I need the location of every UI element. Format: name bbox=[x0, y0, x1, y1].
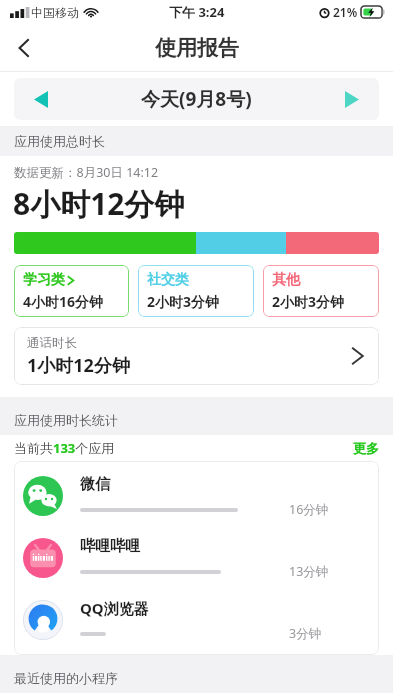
button[interactable]: 其他 bbox=[263, 265, 379, 317]
button[interactable]: 前一天 bbox=[14, 78, 68, 120]
staticText: 使用报告 bbox=[155, 35, 239, 61]
staticText: 学习类 bbox=[23, 271, 65, 289]
staticText: 应用使用时长统计 bbox=[14, 412, 118, 428]
button[interactable]: 学习类 bbox=[14, 265, 129, 317]
staticText: 1小时12分钟 bbox=[27, 353, 130, 378]
staticText: 3分钟 bbox=[289, 625, 322, 642]
button[interactable]: 微信 bbox=[14, 465, 379, 527]
staticText: 16分钟 bbox=[289, 501, 329, 518]
staticText: 8小时12分钟 bbox=[13, 183, 185, 224]
staticText: QQ浏览器 bbox=[80, 598, 149, 618]
button[interactable]: 社交类 bbox=[138, 265, 254, 317]
staticText: 4小时16分钟 bbox=[23, 292, 104, 311]
staticText: 当前共133个应用 bbox=[14, 439, 115, 457]
staticText: 通话时长 bbox=[27, 335, 77, 351]
staticText: 下午 3:24 bbox=[169, 3, 225, 21]
button[interactable]: 哔哩哔哩 bbox=[14, 527, 379, 589]
button[interactable]: QQ浏览器 bbox=[14, 589, 379, 651]
staticText: 21% bbox=[333, 4, 358, 20]
staticText: 2小时3分钟 bbox=[272, 292, 345, 311]
staticText: 哔哩哔哩 bbox=[80, 537, 140, 556]
staticText: 数据更新：8月30日 14:12 bbox=[14, 164, 159, 181]
button[interactable]: 后一天 bbox=[325, 78, 379, 120]
staticText: 微信 bbox=[80, 475, 110, 494]
staticText: 2小时3分钟 bbox=[147, 292, 220, 311]
staticText: 更多 bbox=[353, 440, 379, 456]
button[interactable]: 通话时长 bbox=[14, 327, 379, 385]
button[interactable]: 返回 bbox=[0, 24, 48, 72]
staticText: 其他 bbox=[272, 271, 300, 289]
button[interactable]: 更多 bbox=[353, 440, 379, 456]
staticText: 中国移动 bbox=[31, 5, 79, 20]
staticText: 社交类 bbox=[147, 271, 189, 289]
staticText: 应用使用总时长 bbox=[14, 133, 105, 149]
staticText: 最近使用的小程序 bbox=[14, 670, 118, 686]
staticText: 13分钟 bbox=[289, 563, 329, 580]
staticText: 今天(9月8号) bbox=[141, 86, 252, 112]
